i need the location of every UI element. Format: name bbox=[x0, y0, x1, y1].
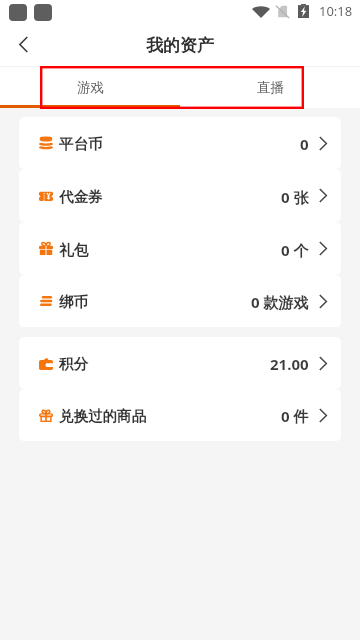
button[interactable]: 绑币 bbox=[19, 275, 341, 327]
staticText: 绑币 bbox=[59, 293, 88, 311]
button[interactable]: 游戏 bbox=[0, 67, 180, 108]
button[interactable]: 积分 bbox=[19, 337, 341, 389]
staticText: 积分 bbox=[59, 355, 88, 373]
button[interactable]: 代金券 bbox=[19, 169, 341, 222]
staticText: 0 bbox=[300, 134, 309, 154]
button[interactable]: Back bbox=[0, 22, 46, 67]
staticText: 代金券 bbox=[59, 188, 103, 206]
staticText: 0 件 bbox=[281, 406, 309, 426]
staticText: 直播 bbox=[257, 79, 284, 96]
staticText: 平台币 bbox=[59, 135, 103, 153]
staticText: 0 个 bbox=[281, 240, 309, 260]
staticText: 我的资产 bbox=[146, 35, 214, 56]
staticText: 0 款游戏 bbox=[251, 292, 309, 312]
button[interactable]: 直播 bbox=[180, 67, 360, 108]
staticText: 10:18 bbox=[319, 2, 353, 20]
button[interactable]: 兑换过的商品 bbox=[19, 389, 341, 441]
button[interactable]: 平台币 bbox=[19, 117, 341, 169]
staticText: 游戏 bbox=[77, 79, 104, 96]
button[interactable]: 礼包 bbox=[19, 222, 341, 275]
staticText: 21.00 bbox=[270, 354, 309, 374]
staticText: 兑换过的商品 bbox=[59, 407, 146, 425]
staticText: 0 张 bbox=[281, 187, 309, 207]
staticText: 礼包 bbox=[59, 241, 88, 259]
